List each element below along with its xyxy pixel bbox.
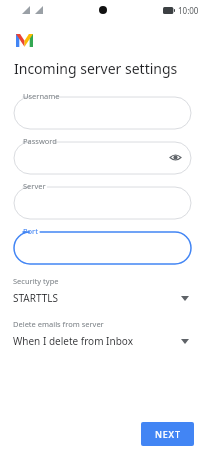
staticText: Security type — [13, 276, 59, 286]
staticText: Server — [23, 181, 46, 191]
staticText: 10:00 — [178, 5, 199, 16]
staticText: Incoming server settings — [14, 59, 178, 78]
button[interactable]: Show password — [167, 149, 183, 165]
staticText: Username — [23, 91, 60, 101]
button[interactable]: Delete emails from server — [0, 319, 205, 348]
staticText: Port — [23, 226, 38, 236]
button[interactable]: Server — [14, 181, 191, 219]
staticText: When I delete from Inbox — [13, 334, 181, 348]
staticText: Delete emails from server — [13, 319, 104, 329]
button[interactable]: Security type — [0, 276, 205, 305]
staticText: NEXT — [155, 428, 181, 440]
staticText: STARTTLS — [13, 291, 181, 305]
button[interactable]: Username — [14, 91, 191, 129]
button[interactable]: NEXT — [141, 422, 194, 446]
staticText: Password — [23, 136, 57, 146]
button[interactable]: Password — [14, 136, 191, 174]
button[interactable]: Port — [14, 226, 191, 264]
